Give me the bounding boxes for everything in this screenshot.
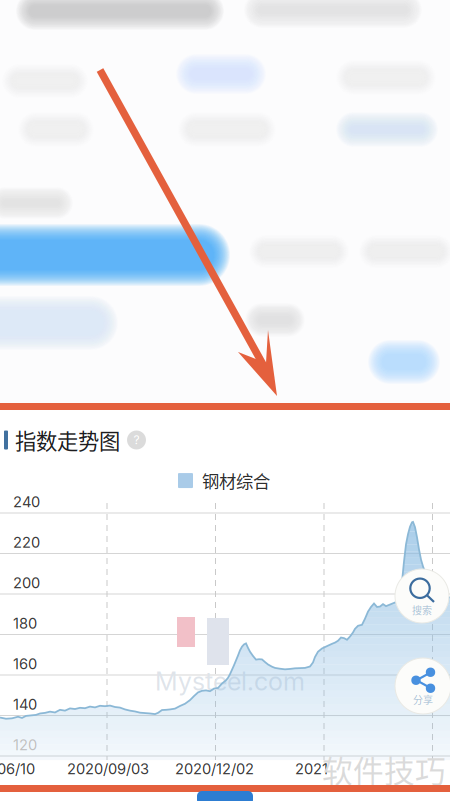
button[interactable]: 搜索: [395, 569, 449, 623]
button[interactable]: 指数走势图: [4, 428, 444, 452]
staticText: 2020/09/03: [67, 760, 149, 778]
staticText: 指数走势图: [15, 425, 120, 455]
staticText: 软件技巧: [322, 747, 446, 791]
staticText: 200: [13, 574, 40, 592]
staticText: ?: [133, 433, 139, 447]
staticText: 2020/12/02: [175, 760, 254, 778]
staticText: 160: [13, 655, 37, 673]
staticText: 120: [13, 736, 37, 754]
staticText: 搜索: [412, 603, 432, 617]
staticText: 140: [13, 695, 37, 713]
staticText: 06/10: [0, 760, 35, 778]
button[interactable]: 分享: [395, 658, 450, 714]
staticText: 220: [13, 533, 40, 551]
staticText: 240: [13, 493, 40, 511]
staticText: 分享: [413, 692, 433, 707]
staticText: 180: [13, 614, 37, 632]
staticText: 钢材综合: [202, 468, 270, 493]
staticText: Mysteel.com: [155, 666, 305, 697]
staticText: 2021: [295, 760, 328, 778]
